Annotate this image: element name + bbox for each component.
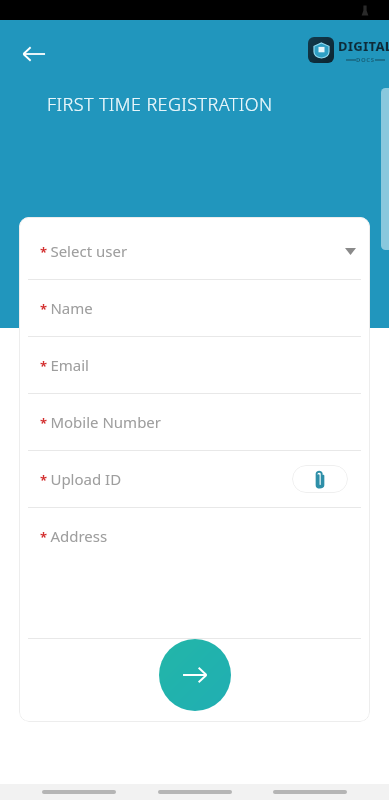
button[interactable]: * Mobile Number	[19, 394, 370, 450]
staticText: * Mobile Number	[40, 412, 162, 432]
staticText: * Email	[40, 355, 89, 375]
button[interactable]: Back	[42, 790, 116, 794]
staticText: DIGITAL	[338, 37, 389, 55]
button[interactable]: Submit registration	[159, 639, 231, 711]
button[interactable]: * Address	[19, 508, 370, 638]
staticText: * Upload ID	[40, 469, 122, 489]
staticText: * Select user	[40, 241, 128, 261]
staticText: * Name	[40, 298, 93, 318]
button[interactable]: * Select user	[19, 223, 370, 279]
button[interactable]: Attach ID document	[292, 465, 348, 493]
button[interactable]: Recent apps	[273, 790, 347, 794]
staticText: * Address	[40, 526, 108, 546]
button[interactable]: Home	[158, 790, 232, 794]
staticText: FIRST TIME REGISTRATION	[47, 92, 273, 117]
button[interactable]: Back	[14, 34, 54, 74]
button[interactable]: Digital Docs logo	[308, 36, 389, 64]
staticText: DOCS	[356, 56, 375, 64]
button[interactable]: * Upload ID	[19, 451, 370, 507]
button[interactable]: * Name	[19, 280, 370, 336]
button[interactable]: * Email	[19, 337, 370, 393]
